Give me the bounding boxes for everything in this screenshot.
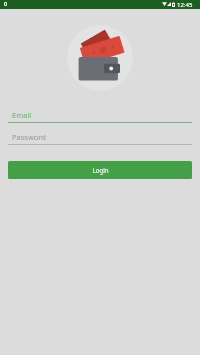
button[interactable]: Login (8, 161, 192, 179)
staticText: 12:45 (177, 1, 193, 9)
button[interactable]: Email (8, 110, 192, 123)
staticText: Login (92, 166, 109, 174)
button[interactable]: Password (8, 132, 192, 145)
staticText: Email (12, 110, 32, 120)
staticText: Password (12, 132, 46, 142)
